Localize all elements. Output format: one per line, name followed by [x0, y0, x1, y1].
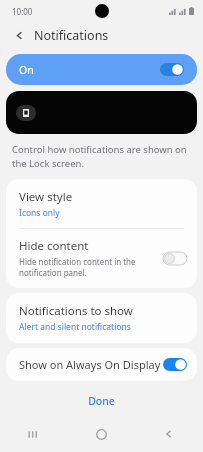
staticText: Done — [88, 394, 115, 408]
staticText: Icons only — [19, 207, 60, 219]
staticText: Hide content — [19, 238, 89, 254]
staticText: Alert and silent notifications — [19, 321, 131, 333]
button[interactable]: Done — [70, 389, 133, 413]
staticText: On — [19, 63, 34, 77]
button[interactable]: Notifications to show — [6, 293, 197, 343]
staticText: Control how notifications are shown on t… — [12, 143, 191, 170]
button[interactable]: View style — [6, 179, 197, 228]
staticText: 10:00 — [12, 6, 33, 17]
button[interactable]: Recents — [0, 416, 67, 452]
button[interactable]: Back — [135, 416, 203, 452]
staticText: Notifications to show — [19, 303, 133, 319]
button[interactable]: On — [6, 54, 197, 85]
button[interactable]: Hide content — [6, 229, 197, 288]
button[interactable]: Back — [10, 26, 28, 44]
staticText: View style — [19, 189, 73, 205]
button[interactable]: Home — [67, 416, 135, 452]
button[interactable] — [6, 91, 197, 134]
staticText: Notifications — [34, 27, 109, 44]
button[interactable]: Show on Always On Display — [6, 348, 197, 381]
staticText: Show on Always On Display — [19, 357, 161, 372]
staticText: Hide notification content in the notific… — [19, 256, 155, 278]
